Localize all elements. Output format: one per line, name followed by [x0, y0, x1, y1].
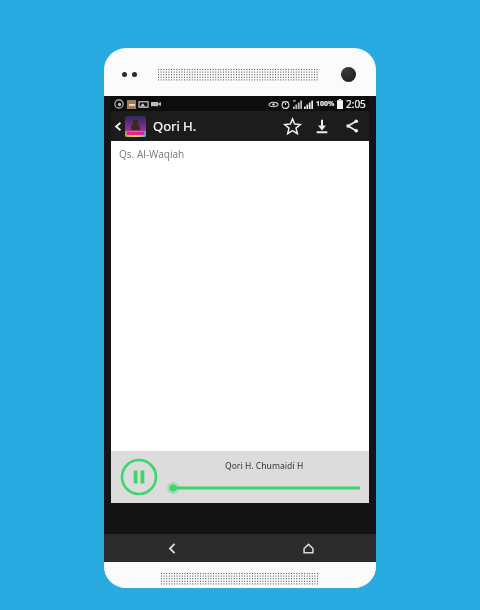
button[interactable]: Share	[337, 111, 367, 141]
staticText: Qs. Al-Waqiah	[119, 147, 185, 161]
button[interactable]: Back	[104, 534, 240, 562]
staticText: Qori H. Chumaidi H	[225, 460, 304, 472]
staticText: 2:05	[346, 97, 366, 111]
button[interactable]: Back	[111, 111, 125, 141]
button[interactable]: Seek bar	[169, 481, 360, 495]
button[interactable]: Download	[307, 111, 337, 141]
staticText: Qori H. Chumai…	[153, 117, 215, 135]
button[interactable]: Favorite	[277, 111, 307, 141]
button[interactable]: Pause	[119, 457, 159, 497]
button[interactable]: Qs. Al-Waqiah	[111, 141, 369, 167]
staticText: 100%	[316, 99, 335, 109]
button[interactable]: Home	[240, 534, 376, 562]
